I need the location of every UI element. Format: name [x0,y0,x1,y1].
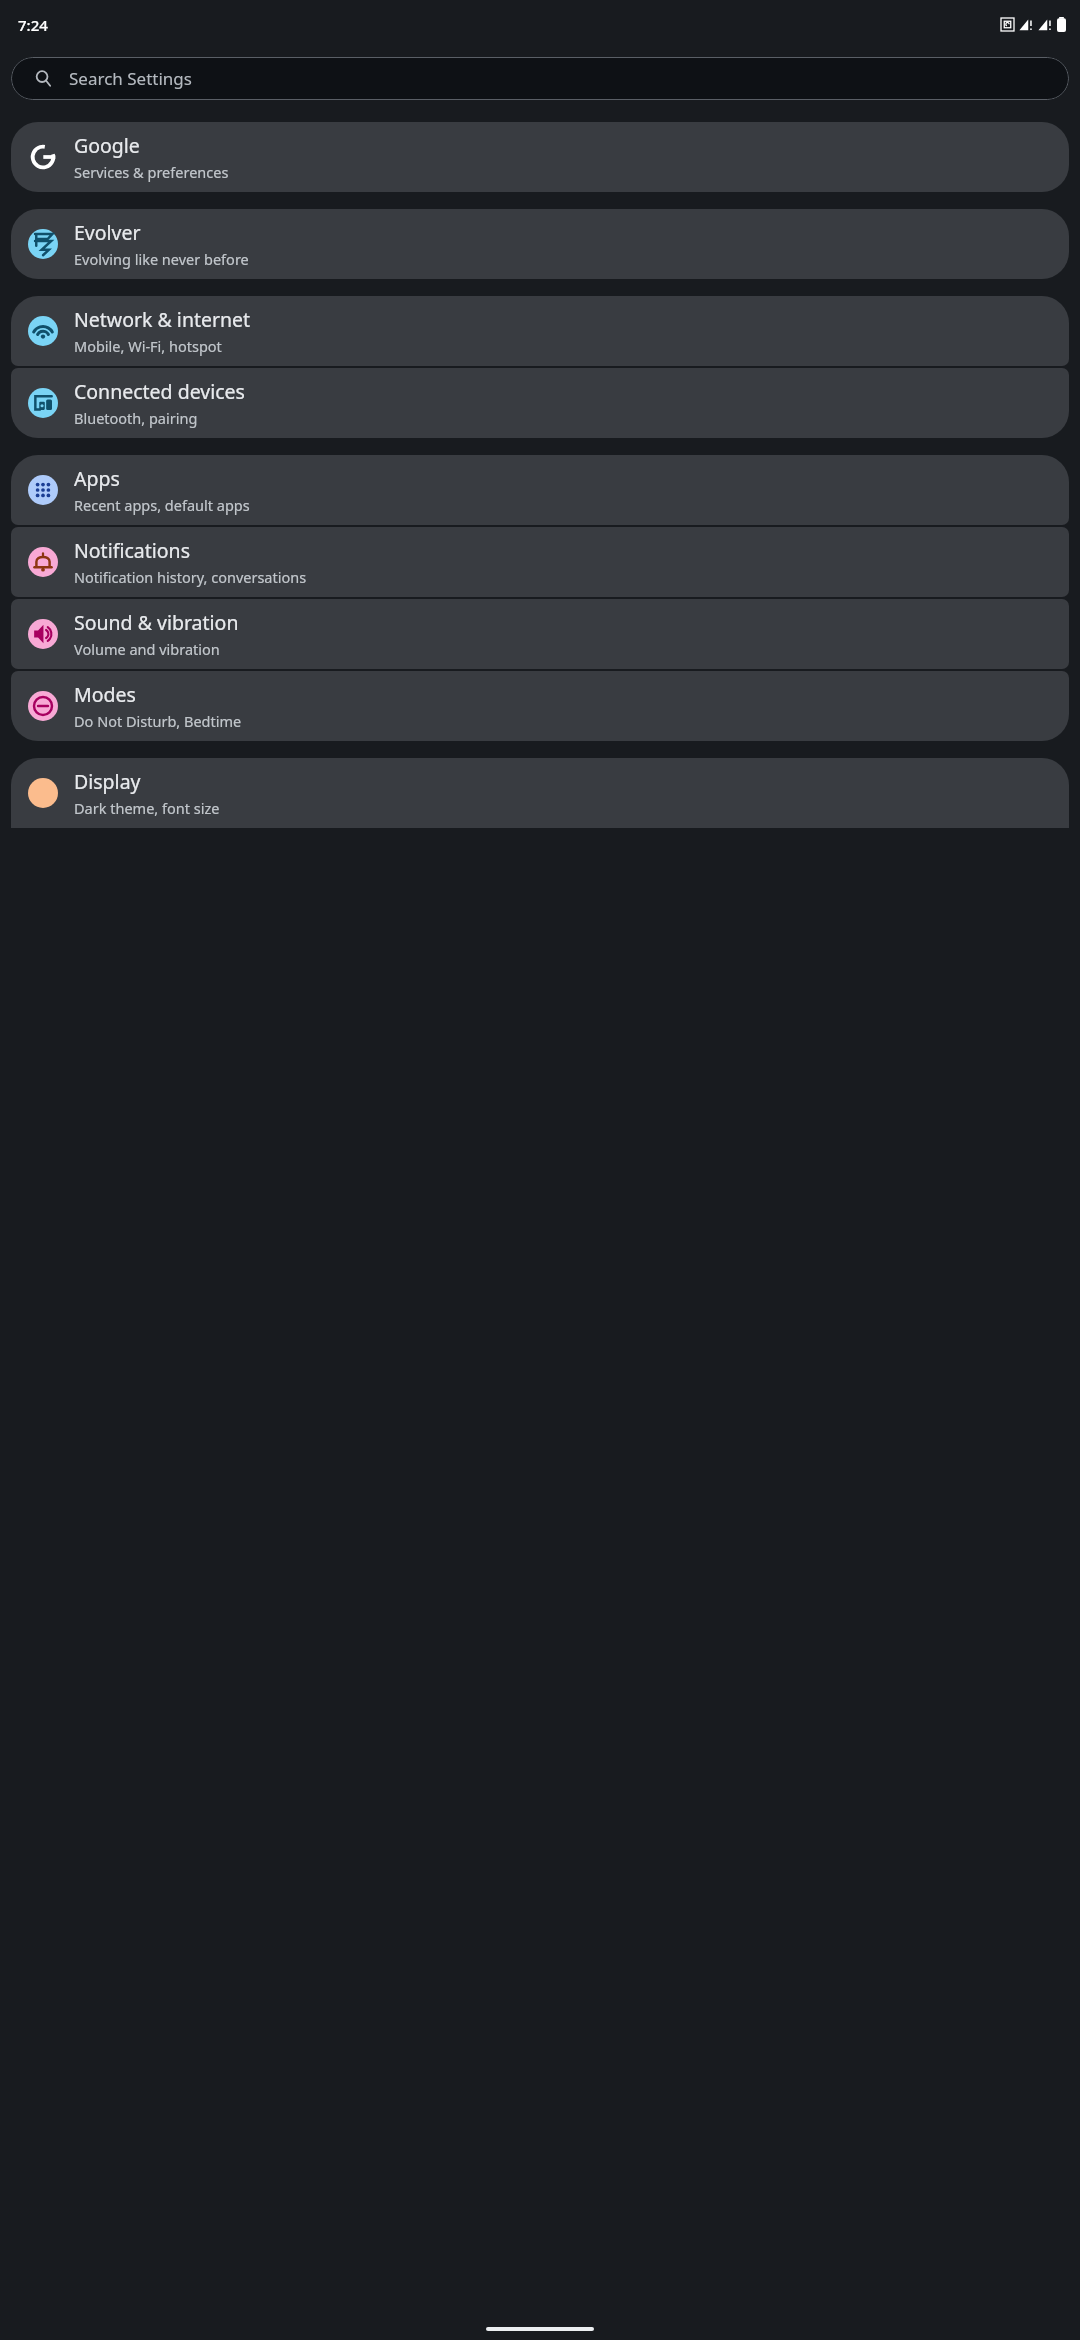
button[interactable]: Apps [11,455,1069,525]
staticText: Notifications [74,537,190,564]
staticText: Display [74,768,141,795]
staticText: Evolver [74,219,141,246]
staticText: Bluetooth, pairing [74,408,198,428]
staticText: Volume and vibration [74,639,220,659]
button[interactable]: Sound & vibration [11,599,1069,669]
button[interactable]: Display [11,758,1069,828]
staticText: Search Settings [69,67,192,90]
staticText: Services & preferences [74,162,229,182]
staticText: Notification history, conversations [74,567,307,587]
button[interactable]: Evolver [11,209,1069,279]
staticText: Connected devices [74,378,245,405]
staticText: Do Not Disturb, Bedtime [74,711,242,731]
button[interactable]: Connected devices [11,368,1069,438]
staticText: Network & internet [74,306,251,333]
staticText: 7:24 [18,15,48,35]
staticText: Sound & vibration [74,609,239,636]
other: Battery [1057,17,1066,32]
button[interactable]: Google [11,122,1069,192]
other: NFC [1001,18,1014,31]
button[interactable]: Network & internet [11,296,1069,366]
button[interactable]: Notifications [11,527,1069,597]
staticText: Google [74,132,140,159]
button[interactable]: Search Settings [11,57,1069,100]
staticText: Evolving like never before [74,249,249,269]
button[interactable]: Modes [11,671,1069,741]
staticText: Mobile, Wi-Fi, hotspot [74,336,222,356]
staticText: Modes [74,681,136,708]
staticText: Recent apps, default apps [74,495,250,515]
staticText: Apps [74,465,120,492]
other: Signal [1019,18,1033,32]
staticText: Dark theme, font size [74,798,220,818]
other: Signal [1038,18,1052,32]
